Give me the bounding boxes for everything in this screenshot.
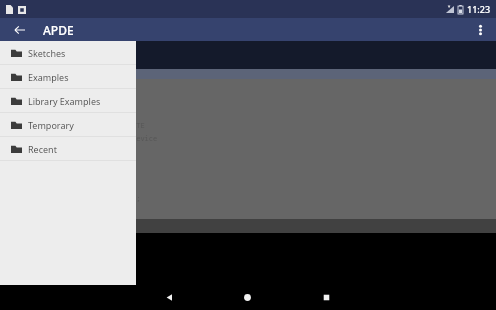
button[interactable]: Sketches — [0, 41, 136, 64]
staticText: ); — [132, 194, 141, 204]
button[interactable]: Examples — [0, 65, 136, 88]
button[interactable]: Recent apps — [287, 285, 366, 310]
staticText: Sketches — [28, 47, 66, 59]
button[interactable]: Library Examples — [0, 89, 136, 112]
staticText: Temporary — [28, 119, 74, 131]
staticText: ATE — [132, 121, 145, 131]
staticText: 11:23 — [467, 3, 491, 15]
button[interactable]: Back — [130, 285, 208, 310]
staticText: . — [132, 166, 137, 176]
staticText: device — [132, 134, 158, 144]
staticText: APDE — [43, 22, 74, 38]
staticText: Recent — [28, 143, 57, 155]
button[interactable]: Back — [10, 20, 30, 40]
staticText: Examples — [28, 71, 69, 83]
button[interactable]: More options — [470, 20, 490, 40]
staticText: Library Examples — [28, 95, 101, 107]
button[interactable]: Home — [208, 285, 287, 310]
button[interactable]: Temporary — [0, 113, 136, 136]
button[interactable]: Recent — [0, 137, 136, 160]
